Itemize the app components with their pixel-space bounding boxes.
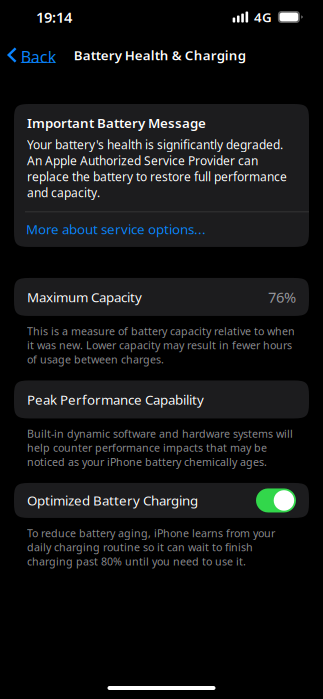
staticText: Important Battery Message [27,114,206,132]
button[interactable]: More about service options... [14,212,309,247]
staticText: 19:14 [36,7,72,27]
staticText: Optimized Battery Charging [27,492,198,509]
staticText: To reduce battery aging, iPhone learns f… [27,526,275,568]
staticText: Battery Health & Charging [74,46,246,64]
staticText: More about service options... [26,220,206,238]
staticText: 4G [254,8,272,26]
staticText: 76% [268,287,296,307]
staticText: This is a measure of battery capacity re… [27,324,295,366]
staticText: Maximum Capacity [27,288,142,306]
staticText: Built-in dynamic software and hardware s… [27,426,293,469]
button[interactable]: Back [0,34,61,76]
button[interactable]: Optimized Battery Charging [0,483,323,518]
staticText: Peak Performance Capability [27,391,204,408]
staticText: Back [21,46,57,67]
staticText: Your battery's health is significantly d… [27,137,287,200]
